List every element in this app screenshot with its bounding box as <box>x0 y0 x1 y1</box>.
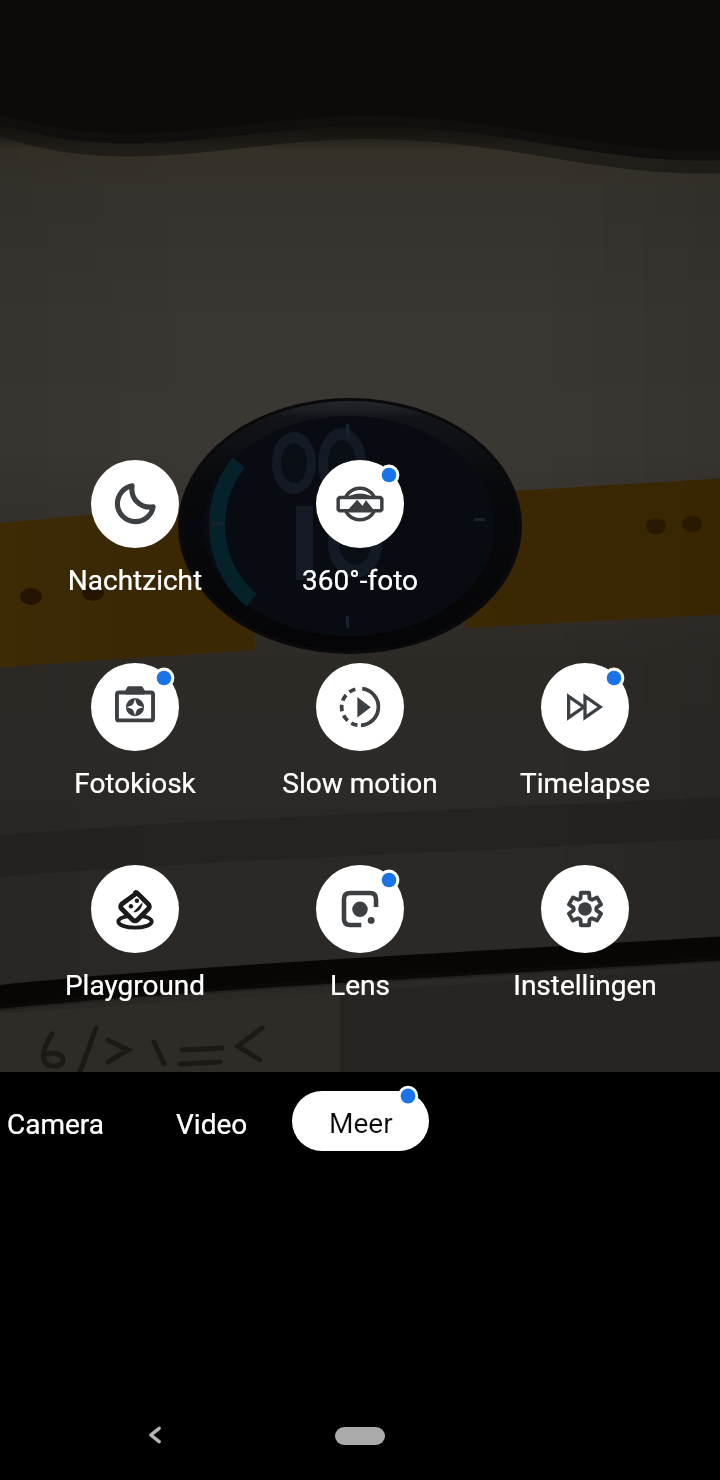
button[interactable]: Camera <box>0 1094 133 1154</box>
staticText: Instellingen <box>473 969 697 1002</box>
button[interactable]: Back <box>127 1407 183 1463</box>
staticText: Video <box>176 1108 248 1141</box>
button[interactable]: Lens <box>248 865 472 997</box>
button[interactable]: Fotokiosk <box>23 663 247 795</box>
staticText: Playground <box>23 969 247 1002</box>
button[interactable]: Home <box>300 1416 420 1456</box>
button[interactable]: Nachtzicht <box>23 460 247 592</box>
staticText: Camera <box>7 1108 105 1141</box>
button[interactable]: Instellingen <box>473 865 697 997</box>
staticText: 360°-foto <box>248 564 472 597</box>
staticText: Timelapse <box>473 767 697 800</box>
button[interactable]: 360°-foto <box>248 460 472 592</box>
staticText: Fotokiosk <box>23 767 247 800</box>
staticText: Lens <box>248 969 472 1002</box>
button[interactable]: Timelapse <box>473 663 697 795</box>
staticText: Slow motion <box>248 767 472 800</box>
button[interactable]: Slow motion <box>248 663 472 795</box>
button[interactable]: Playground <box>23 865 247 997</box>
staticText: Nachtzicht <box>23 564 247 597</box>
staticText: Meer <box>329 1107 393 1140</box>
button[interactable]: Video <box>142 1094 281 1154</box>
button[interactable]: Meer <box>292 1095 429 1151</box>
